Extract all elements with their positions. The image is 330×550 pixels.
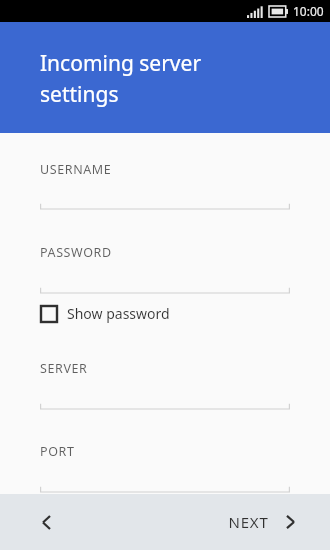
button[interactable]: NEXT <box>222 504 304 540</box>
staticText: Show password <box>67 304 170 323</box>
button[interactable]: USERNAME <box>40 161 112 178</box>
staticText: NEXT <box>228 512 269 532</box>
button[interactable]: PORT <box>40 443 75 460</box>
button[interactable]: PASSWORD <box>40 244 112 261</box>
button[interactable]: Back <box>30 506 62 538</box>
staticText: 10:00 <box>293 3 324 19</box>
button[interactable]: Show password <box>38 301 172 326</box>
staticText: Incoming server settings <box>40 49 202 108</box>
button[interactable]: SERVER <box>40 360 88 377</box>
